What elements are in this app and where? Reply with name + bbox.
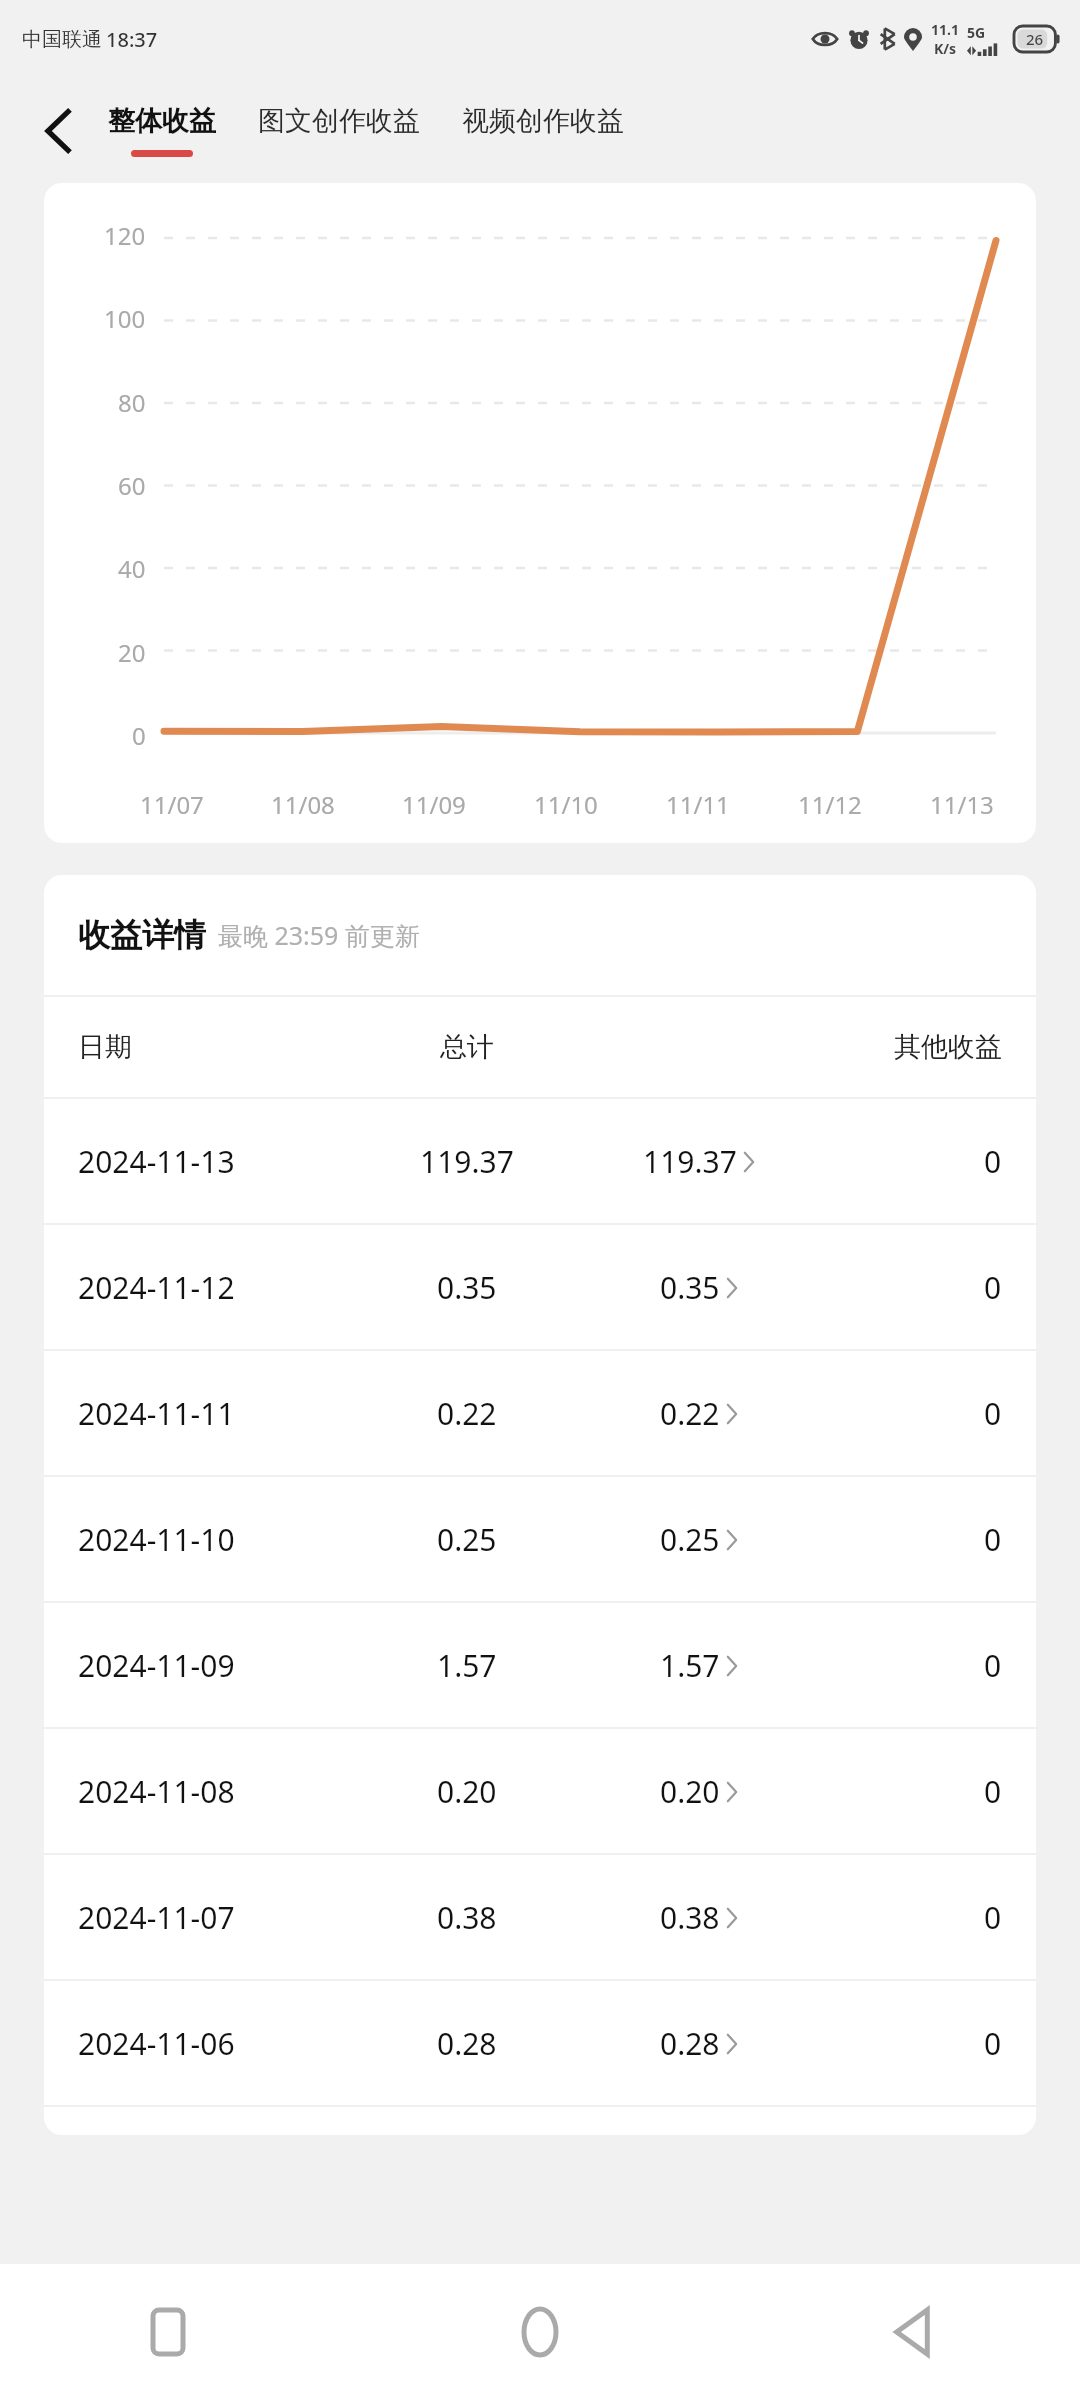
button[interactable]: Back (22, 95, 94, 167)
button[interactable]: 2024-11-08 (44, 1729, 1036, 1853)
button[interactable]: 2024-11-13 (44, 1099, 1036, 1223)
staticText: 0 (984, 1267, 1002, 1308)
staticText: 视频创作收益 (462, 104, 624, 138)
staticText: 0.25 (437, 1519, 497, 1560)
staticText: 1.57 (660, 1645, 720, 1686)
staticText: 0.28 (437, 2023, 497, 2064)
staticText: 整体收益 (108, 104, 216, 138)
staticText: 2024-11-06 (78, 2023, 235, 2064)
staticText: 11/12 (798, 788, 862, 821)
button[interactable]: 2024-11-12 (44, 1225, 1036, 1349)
staticText: 18:37 (106, 26, 158, 53)
staticText: 1.57 (437, 1645, 497, 1686)
button[interactable]: 视频创作收益 (460, 104, 626, 157)
staticText: 其他收益 (894, 1030, 1002, 1064)
button[interactable]: 2024-11-09 (44, 1603, 1036, 1727)
staticText: 收益详情 (78, 915, 206, 955)
staticText: 11/11 (666, 788, 730, 821)
staticText: 0 (984, 1645, 1002, 1686)
staticText: 0.28 (660, 2023, 720, 2064)
staticText: 80 (118, 386, 146, 420)
staticText: 2024-11-13 (78, 1141, 235, 1182)
staticText: 2024-11-08 (78, 1771, 235, 1812)
button[interactable]: 图文创作收益 (256, 104, 422, 157)
staticText: 119.37 (420, 1141, 514, 1182)
staticText: 0.22 (437, 1393, 497, 1434)
staticText: 0 (132, 719, 146, 753)
staticText: 最晚 23:59 前更新 (218, 918, 420, 952)
button[interactable]: 2024-11-10 (44, 1477, 1036, 1601)
staticText: 0.38 (437, 1897, 497, 1938)
staticText: 2024-11-07 (78, 1897, 235, 1938)
staticText: 0 (984, 1897, 1002, 1938)
staticText: 0.22 (660, 1393, 720, 1434)
staticText: 总计 (440, 1030, 494, 1064)
button[interactable]: Home (492, 2284, 588, 2380)
staticText: 11/08 (271, 788, 335, 821)
staticText: 120 (104, 219, 146, 253)
staticText: 26 (1026, 29, 1044, 49)
staticText: 0.35 (437, 1267, 497, 1308)
staticText: 图文创作收益 (258, 104, 420, 138)
button[interactable]: 整体收益 (106, 104, 218, 157)
staticText: 100 (104, 302, 146, 336)
button[interactable]: Recent apps (120, 2284, 216, 2380)
staticText: 日期 (78, 1030, 132, 1064)
staticText: 0.35 (660, 1267, 720, 1308)
staticText: K/s (934, 39, 957, 58)
staticText: 0 (984, 1393, 1002, 1434)
staticText: 11/13 (930, 788, 994, 821)
staticText: 0.25 (660, 1519, 720, 1560)
button[interactable]: 2024-11-11 (44, 1351, 1036, 1475)
staticText: 2024-11-11 (78, 1393, 235, 1434)
staticText: 0.38 (660, 1897, 720, 1938)
staticText: 0.20 (660, 1771, 720, 1812)
staticText: 11/07 (140, 788, 204, 821)
staticText: 11.1 (931, 20, 959, 39)
staticText: 119.37 (643, 1141, 737, 1182)
staticText: 2024-11-10 (78, 1519, 235, 1560)
button[interactable]: Back (864, 2284, 960, 2380)
staticText: 0 (984, 1519, 1002, 1560)
staticText: 11/10 (534, 788, 598, 821)
staticText: 0.20 (437, 1771, 497, 1812)
staticText: 2024-11-09 (78, 1645, 235, 1686)
button[interactable]: 2024-11-07 (44, 1855, 1036, 1979)
staticText: 中国联通 (22, 27, 102, 52)
staticText: 60 (118, 469, 146, 503)
button[interactable]: 2024-11-06 (44, 1981, 1036, 2105)
staticText: 5G (967, 23, 986, 42)
staticText: 40 (118, 552, 146, 586)
staticText: 0 (984, 1141, 1002, 1182)
staticText: 0 (984, 1771, 1002, 1812)
staticText: 0 (984, 2023, 1002, 2064)
staticText: 11/09 (402, 788, 466, 821)
staticText: 20 (118, 636, 146, 670)
staticText: 2024-11-12 (78, 1267, 235, 1308)
